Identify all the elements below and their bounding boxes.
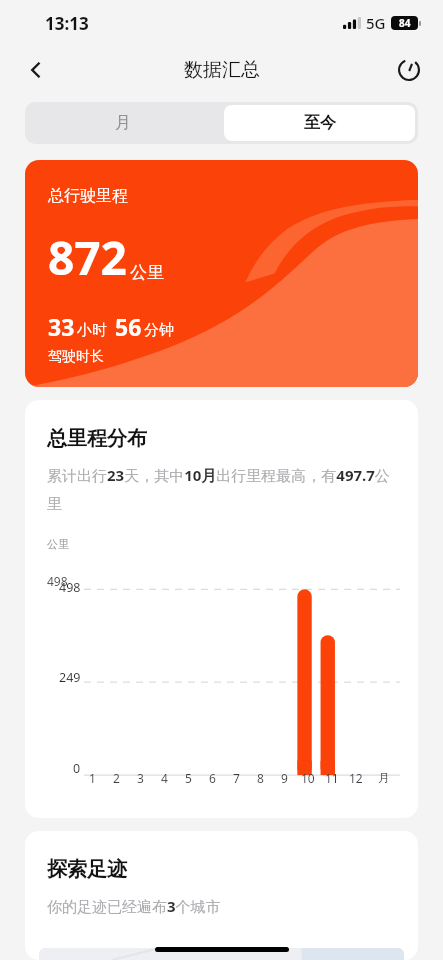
- staticText: 5: [185, 770, 192, 786]
- staticText: 4: [161, 770, 168, 786]
- button[interactable]: 至今: [224, 105, 415, 141]
- staticText: 498: [47, 573, 68, 589]
- staticText: 56: [115, 311, 142, 342]
- staticText: 872: [48, 226, 127, 289]
- button[interactable]: Back: [14, 48, 58, 92]
- staticText: 7: [233, 770, 240, 786]
- staticText: 至今: [304, 113, 336, 133]
- staticText: 驾驶时长: [48, 348, 104, 366]
- staticText: 498: [59, 579, 81, 596]
- staticText: 5G: [366, 13, 386, 33]
- staticText: 公里: [47, 537, 69, 551]
- staticText: 总行驶里程: [48, 186, 128, 206]
- staticText: 分钟: [144, 321, 174, 340]
- staticText: 10: [301, 770, 315, 786]
- staticText: 11: [325, 770, 339, 786]
- staticText: 小时: [77, 321, 107, 340]
- staticText: 公里: [130, 262, 164, 283]
- staticText: 13:13: [45, 12, 89, 35]
- button[interactable]: Refresh: [387, 48, 431, 92]
- button[interactable]: 探索足迹: [25, 831, 418, 960]
- button[interactable]: 总里程分布: [25, 400, 418, 818]
- staticText: 1: [89, 770, 96, 786]
- staticText: 6: [209, 770, 216, 786]
- button[interactable]: 总行驶里程: [25, 160, 418, 387]
- staticText: 你的足迹已经遍布3个城市: [47, 896, 221, 916]
- staticText: 84: [399, 16, 411, 30]
- button[interactable]: 月: [25, 102, 221, 144]
- staticText: 数据汇总: [184, 58, 260, 82]
- staticText: 0: [73, 760, 81, 777]
- staticText: 月: [378, 770, 390, 785]
- staticText: 12: [349, 770, 363, 786]
- staticText: 8: [257, 770, 264, 786]
- staticText: 9: [281, 770, 288, 786]
- staticText: 总里程分布: [47, 426, 147, 451]
- staticText: 3: [137, 770, 144, 786]
- staticText: 33: [48, 311, 75, 342]
- staticText: 2: [113, 770, 120, 786]
- staticText: 249: [59, 669, 81, 686]
- staticText: 探索足迹: [47, 857, 127, 882]
- staticText: 累计出行23天，其中10月出行里程最高，有497.7公里: [47, 465, 400, 513]
- staticText: 月: [115, 113, 131, 133]
